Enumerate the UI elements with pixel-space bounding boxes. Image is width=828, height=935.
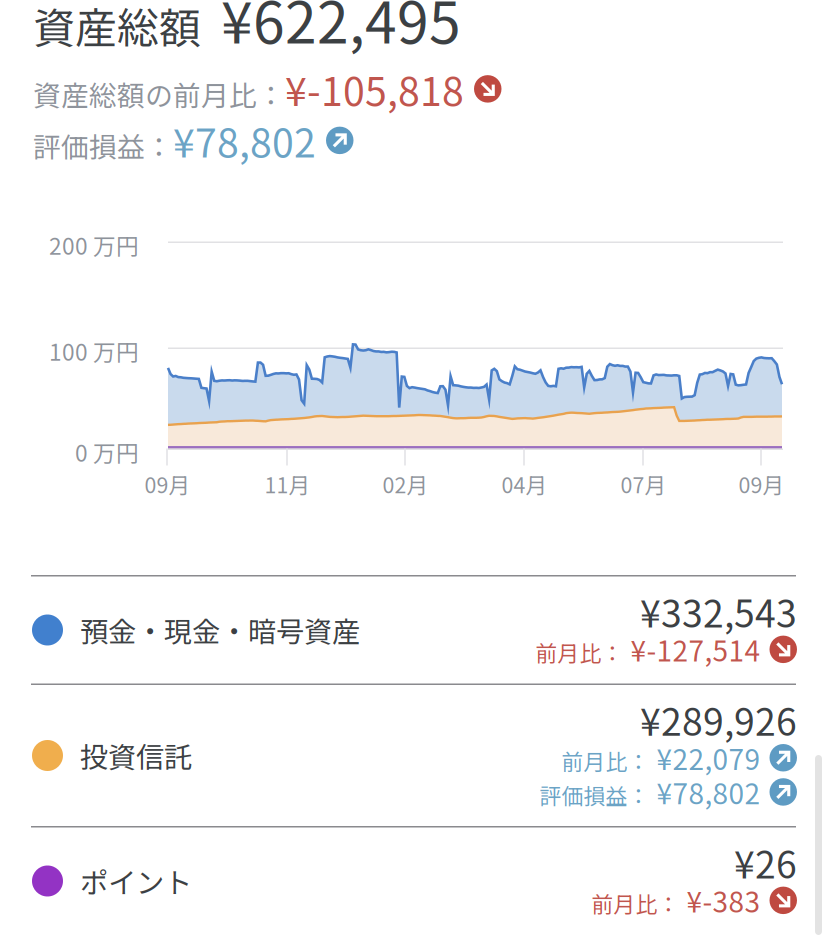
staticText: ¥-105,818 [285,60,464,117]
staticText: 11月 [264,468,309,499]
staticText: 資産総額の前月比： [33,74,285,114]
staticText: ¥22,079 [656,737,760,778]
staticText: ¥-127,514 [630,629,760,670]
staticText: ¥332,543 [640,584,797,638]
staticText: 前月比： [561,745,649,776]
staticText: ¥26 [734,835,797,889]
staticText: 評価損益： [539,779,649,810]
staticText: 評価損益： [33,125,173,165]
staticText: 預金・現金・暗号資産 [80,609,360,650]
button[interactable]: ポイント [0,827,828,934]
button[interactable]: 投資信託 [0,685,828,826]
staticText: 前月比： [591,887,679,919]
staticText: 09月 [144,468,189,499]
staticText: ¥289,926 [640,692,797,747]
staticText: ¥-383 [686,880,760,921]
staticText: 09月 [738,468,783,499]
staticText: ¥78,802 [173,112,316,169]
staticText: 前月比： [535,636,623,668]
staticText: 07月 [620,468,665,499]
staticText: 02月 [382,468,427,499]
staticText: ポイント [80,860,192,901]
staticText: 資産総額 [33,0,201,56]
button[interactable]: 預金・現金・暗号資産 [0,576,828,683]
staticText: 200 万円 [49,228,139,261]
staticText: ¥622,495 [221,0,461,60]
staticText: 投資信託 [80,735,192,776]
staticText: 100 万円 [49,334,139,367]
staticText: 04月 [501,468,546,499]
staticText: ¥78,802 [656,772,760,812]
staticText: 0 万円 [75,435,139,468]
